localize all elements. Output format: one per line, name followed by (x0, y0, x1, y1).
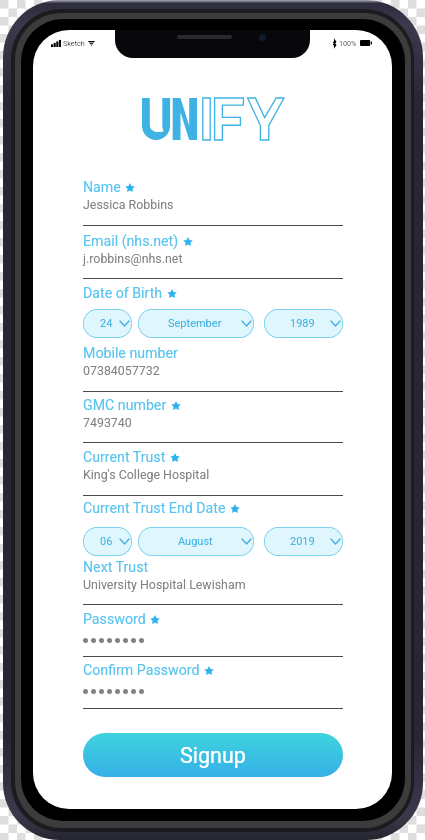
button[interactable]: Password (83, 611, 343, 657)
staticText: Email (nhs.net) (83, 233, 179, 250)
staticText: Sketch (63, 39, 85, 47)
button[interactable]: Signup (83, 733, 343, 777)
staticText: August (178, 535, 213, 548)
button[interactable]: 24 (83, 309, 132, 338)
staticText: Current Trust (83, 449, 166, 466)
button[interactable]: August (138, 527, 254, 556)
staticText: Mobile number (83, 345, 178, 362)
staticText: Current Trust End Date (83, 500, 226, 517)
button[interactable]: Name (83, 179, 343, 226)
staticText: 1989 (290, 317, 315, 330)
staticText: Confirm Password (83, 662, 200, 679)
staticText: 07384057732 (83, 363, 160, 378)
button[interactable]: Email (nhs.net) (83, 233, 343, 279)
staticText: Signup (180, 743, 246, 768)
staticText: 06 (100, 535, 113, 548)
button[interactable]: Confirm Password (83, 662, 343, 709)
staticText: September (168, 317, 222, 330)
button[interactable]: Current Trust (83, 449, 343, 496)
staticText: Date of Birth (83, 285, 163, 302)
staticText: GMC number (83, 397, 167, 414)
button[interactable]: GMC number (83, 397, 343, 443)
staticText: 7493740 (83, 415, 132, 430)
button[interactable]: Mobile number (83, 345, 343, 392)
staticText: Name (83, 179, 121, 196)
staticText: 24 (100, 317, 113, 330)
staticText: 100% (339, 39, 357, 47)
staticText: 2019 (290, 535, 315, 548)
staticText: University Hospital Lewisham (83, 577, 246, 592)
staticText: King's College Hospital (83, 467, 210, 482)
button[interactable]: 2019 (264, 527, 343, 556)
staticText: Jessica Robbins (83, 197, 174, 212)
button[interactable]: 06 (83, 527, 132, 556)
button[interactable]: September (138, 309, 254, 338)
button[interactable]: 1989 (264, 309, 343, 338)
button[interactable]: Next Trust (83, 559, 343, 605)
staticText: Password (83, 611, 146, 628)
staticText: j.robbins@nhs.net (83, 251, 183, 266)
staticText: Next Trust (83, 559, 149, 576)
